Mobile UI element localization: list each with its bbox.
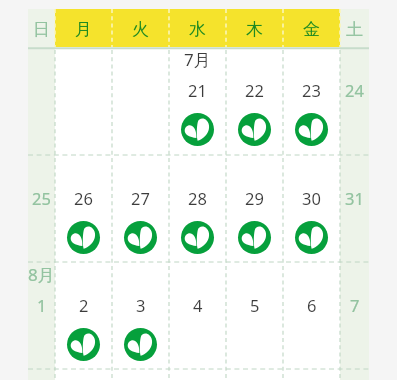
button[interactable]: 3 xyxy=(112,262,169,369)
button[interactable]: 30 xyxy=(283,155,340,262)
button[interactable]: 金 xyxy=(283,9,340,47)
button[interactable]: Growth record xyxy=(67,221,100,254)
staticText: 27 xyxy=(131,187,150,209)
button[interactable]: 土 xyxy=(340,9,369,47)
button[interactable]: Growth record xyxy=(238,113,271,146)
staticText: 4 xyxy=(193,294,203,316)
staticText: 21 xyxy=(188,79,207,101)
button[interactable]: 7月 xyxy=(169,47,226,155)
button[interactable]: 5 xyxy=(226,262,283,369)
staticText: 木 xyxy=(246,19,263,40)
button[interactable]: 月 xyxy=(55,9,112,47)
staticText: 土 xyxy=(346,19,363,40)
staticText: 23 xyxy=(302,79,321,101)
button[interactable]: 25 xyxy=(28,155,55,262)
button[interactable]: 木 xyxy=(226,9,283,47)
staticText: 24 xyxy=(345,79,364,101)
button[interactable]: 28 xyxy=(169,155,226,262)
button[interactable] xyxy=(55,369,112,380)
staticText: 日 xyxy=(33,19,50,40)
staticText: 1 xyxy=(37,294,47,316)
staticText: 水 xyxy=(189,19,206,40)
staticText: 6 xyxy=(307,294,317,316)
button[interactable]: 27 xyxy=(112,155,169,262)
button[interactable] xyxy=(169,369,226,380)
button[interactable]: 2 xyxy=(55,262,112,369)
button[interactable]: Growth record xyxy=(238,221,271,254)
button[interactable]: 7 xyxy=(340,262,369,369)
button[interactable] xyxy=(55,47,112,155)
staticText: 25 xyxy=(32,187,51,209)
button[interactable] xyxy=(28,369,55,380)
button[interactable]: Growth record xyxy=(181,113,214,146)
button[interactable] xyxy=(226,369,283,380)
button[interactable]: 24 xyxy=(340,47,369,155)
button[interactable]: 23 xyxy=(283,47,340,155)
button[interactable]: 8月 xyxy=(28,262,55,369)
staticText: 22 xyxy=(245,79,264,101)
staticText: 金 xyxy=(303,19,320,40)
button[interactable] xyxy=(340,369,369,380)
staticText: 2 xyxy=(79,294,89,316)
button[interactable]: 29 xyxy=(226,155,283,262)
staticText: 5 xyxy=(250,294,260,316)
staticText: 30 xyxy=(302,187,321,209)
staticText: 7 xyxy=(350,294,360,316)
button[interactable]: Growth record xyxy=(124,221,157,254)
staticText: 29 xyxy=(245,187,264,209)
button[interactable]: 4 xyxy=(169,262,226,369)
button[interactable] xyxy=(112,369,169,380)
button[interactable]: Growth record xyxy=(295,221,328,254)
button[interactable]: 31 xyxy=(340,155,369,262)
staticText: 7月 xyxy=(184,48,211,70)
button[interactable]: Growth record xyxy=(67,328,100,361)
staticText: 3 xyxy=(136,294,146,316)
button[interactable]: 日 xyxy=(28,9,55,47)
button[interactable]: 22 xyxy=(226,47,283,155)
button[interactable] xyxy=(112,47,169,155)
staticText: 火 xyxy=(132,19,149,40)
button[interactable]: 火 xyxy=(112,9,169,47)
button[interactable]: 26 xyxy=(55,155,112,262)
button[interactable] xyxy=(283,369,340,380)
button[interactable]: 水 xyxy=(169,9,226,47)
staticText: 月 xyxy=(75,19,92,40)
button[interactable]: Growth record xyxy=(181,221,214,254)
staticText: 8月 xyxy=(28,263,55,285)
staticText: 26 xyxy=(74,187,93,209)
staticText: 28 xyxy=(188,187,207,209)
button[interactable] xyxy=(28,47,55,155)
button[interactable]: Growth record xyxy=(295,113,328,146)
button[interactable]: 6 xyxy=(283,262,340,369)
button[interactable]: Growth record xyxy=(124,328,157,361)
staticText: 31 xyxy=(345,187,364,209)
